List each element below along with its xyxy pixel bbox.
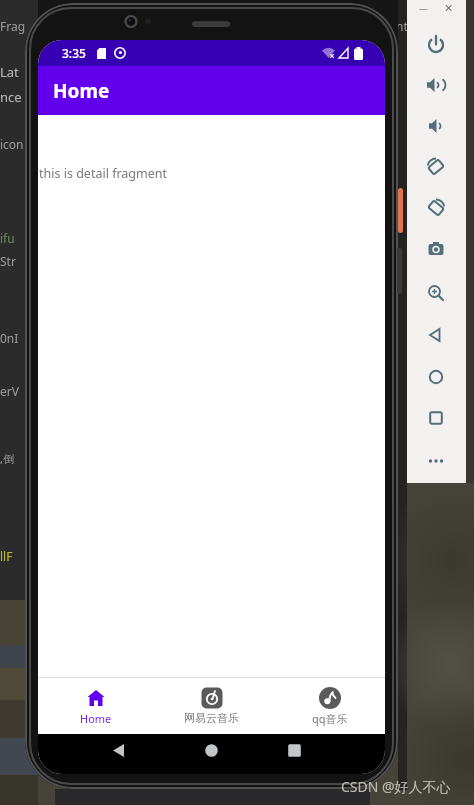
button[interactable] (417, 25, 455, 63)
staticText: Str (0, 253, 16, 269)
staticText: 3:35 (62, 45, 86, 61)
staticText: nce (0, 88, 22, 106)
staticText: Home (53, 78, 110, 104)
button[interactable] (417, 316, 455, 354)
button[interactable] (417, 66, 455, 104)
staticText: CSDN @好人不心 (341, 777, 451, 796)
staticText: Frag (0, 18, 26, 34)
staticText: icon (0, 136, 24, 152)
button[interactable] (417, 358, 455, 396)
staticText: 网易云音乐 (184, 711, 239, 725)
button[interactable]: Home (42, 678, 149, 734)
staticText: 0nI (0, 330, 19, 346)
button[interactable] (417, 442, 455, 480)
staticText: ifu (0, 230, 15, 246)
button[interactable] (417, 274, 455, 312)
staticText: ,倒 (0, 451, 14, 466)
staticText: llF (0, 548, 13, 564)
button[interactable]: qq音乐 (276, 678, 383, 734)
button[interactable] (417, 148, 455, 186)
button[interactable] (101, 734, 138, 774)
button[interactable] (417, 107, 455, 145)
button[interactable] (276, 734, 313, 774)
button[interactable] (417, 189, 455, 227)
staticText: erV (0, 383, 19, 399)
staticText: qq音乐 (312, 711, 348, 726)
button[interactable]: 网易云音乐 (158, 678, 265, 734)
staticText: Lat (0, 63, 19, 81)
staticText: Home (80, 711, 112, 726)
staticText: nt (396, 18, 408, 34)
button[interactable] (417, 399, 455, 437)
button[interactable]: — (419, 2, 429, 14)
staticText: this is detail fragment (39, 165, 168, 182)
button[interactable] (193, 734, 230, 774)
button[interactable]: ✕ (444, 2, 454, 15)
button[interactable] (417, 230, 455, 268)
